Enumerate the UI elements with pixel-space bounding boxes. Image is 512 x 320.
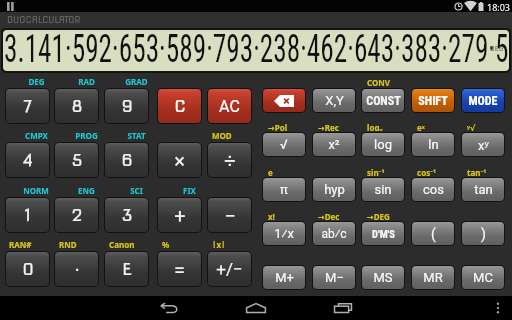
staticText: sin⁻¹	[367, 167, 385, 176]
button[interactable]: Home	[238, 296, 274, 320]
staticText: )	[481, 226, 486, 242]
button[interactable]: ln	[412, 133, 454, 156]
staticText: cos⁻¹	[417, 167, 437, 176]
staticText: 0	[22, 259, 34, 280]
button[interactable]: 8	[55, 89, 98, 123]
staticText: cos	[423, 182, 444, 197]
button[interactable]: √	[263, 133, 305, 156]
button[interactable]: 2	[55, 198, 98, 232]
button[interactable]: xʸ	[462, 133, 504, 156]
button[interactable]: ab⁄c	[313, 222, 355, 245]
staticText: CMPX	[25, 130, 48, 139]
button[interactable]: ÷	[208, 143, 251, 177]
button[interactable]: log	[362, 133, 404, 156]
staticText: 6	[121, 150, 133, 171]
staticText: +	[174, 204, 186, 227]
staticText: →Pol	[268, 122, 288, 131]
staticText: 4	[23, 150, 33, 171]
button[interactable]: SHIFT	[412, 89, 454, 112]
staticText: ab⁄c	[321, 227, 347, 241]
staticText: √	[280, 137, 288, 152]
staticText: ·	[74, 258, 80, 281]
staticText: 8	[71, 96, 83, 117]
button[interactable]: 3	[105, 198, 148, 232]
button[interactable]: 1⁄x	[263, 222, 305, 245]
button[interactable]: MC	[462, 266, 504, 289]
button[interactable]: tan	[462, 178, 504, 201]
button[interactable]: MR	[412, 266, 454, 289]
staticText: CONV	[367, 77, 391, 86]
button[interactable]: )	[462, 222, 504, 245]
staticText: x!	[268, 211, 275, 220]
button[interactable]: ×	[158, 143, 201, 177]
staticText: MR	[423, 270, 443, 285]
button[interactable]: 6	[105, 143, 148, 177]
button[interactable]: D'M'S	[362, 222, 404, 245]
button[interactable]: C	[158, 89, 201, 123]
staticText: GRAD	[125, 76, 148, 85]
button[interactable]: CONST	[362, 89, 404, 112]
staticText: 9	[121, 96, 133, 117]
button[interactable]: −	[208, 198, 251, 232]
staticText: AC	[219, 97, 240, 116]
button[interactable]: hyp	[313, 178, 355, 201]
button[interactable]: ·	[55, 252, 98, 286]
staticText: ʸ√	[467, 122, 476, 131]
staticText: 18:03	[487, 1, 511, 13]
button[interactable]: E	[105, 252, 148, 286]
button[interactable]: X,Y	[313, 89, 355, 112]
button[interactable]: cos	[412, 178, 454, 201]
button[interactable]: +/−	[208, 252, 251, 286]
staticText: 3	[121, 205, 133, 226]
staticText: MC	[473, 270, 493, 285]
staticText: RAD	[78, 76, 95, 85]
button[interactable]: More options	[488, 296, 508, 320]
button[interactable]: sin	[362, 178, 404, 201]
staticText: sin	[374, 182, 392, 197]
button[interactable]: 5	[55, 143, 98, 177]
staticText: Canon	[109, 239, 135, 248]
staticText: MS	[373, 270, 393, 285]
button[interactable]: MODE	[462, 89, 504, 112]
staticText: DUOCALCULATOR	[7, 14, 81, 25]
button[interactable]: π	[263, 178, 305, 201]
button[interactable]: M+	[263, 266, 305, 289]
staticText: ENG	[78, 185, 95, 194]
staticText: →Dec	[318, 211, 340, 220]
staticText: xʸ	[478, 136, 489, 154]
staticText: 5	[71, 150, 83, 171]
staticText: 1	[25, 205, 31, 226]
button[interactable]: =	[158, 252, 201, 286]
button[interactable]: +	[158, 198, 201, 232]
button[interactable]: 1	[6, 198, 49, 232]
button[interactable]: 0	[6, 252, 49, 286]
button[interactable]: (	[412, 222, 454, 245]
staticText: STAT	[127, 130, 146, 139]
staticText: FIX	[183, 185, 196, 194]
staticText: 1⁄x	[274, 226, 294, 241]
staticText: −	[224, 204, 236, 227]
staticText: logᵧ	[367, 122, 383, 131]
button[interactable]: Backspace	[263, 89, 305, 112]
staticText: E	[122, 259, 132, 280]
staticText: 7	[23, 96, 32, 117]
button[interactable]: AC	[208, 89, 251, 123]
button[interactable]: 7	[6, 89, 49, 123]
staticText: ÷	[224, 149, 236, 172]
other: Backspace	[274, 95, 294, 107]
staticText: NORM	[23, 185, 49, 194]
staticText: PROG	[75, 130, 98, 139]
button[interactable]: x²	[313, 133, 355, 156]
staticText: SHIFT	[418, 94, 448, 108]
staticText: tan	[474, 182, 493, 197]
staticText: M+	[275, 270, 294, 285]
staticText: ×	[174, 149, 185, 172]
button[interactable]: Recents	[325, 296, 361, 320]
button[interactable]: MS	[362, 266, 404, 289]
staticText: %	[162, 239, 170, 248]
button[interactable]: Back	[151, 296, 187, 320]
staticText: →Rec	[318, 122, 339, 131]
button[interactable]: 9	[105, 89, 148, 123]
button[interactable]: M−	[313, 266, 355, 289]
button[interactable]: 4	[6, 143, 49, 177]
